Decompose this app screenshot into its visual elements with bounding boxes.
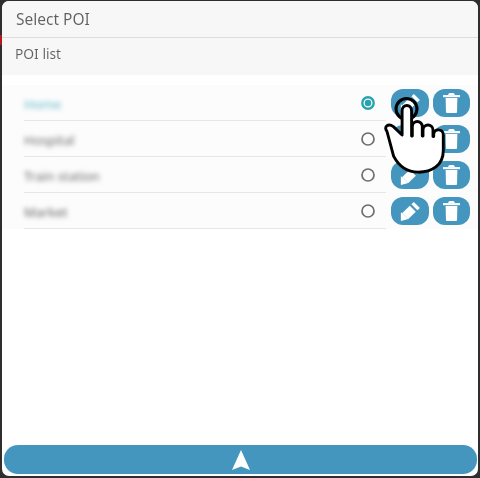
button[interactable]: Edit — [391, 161, 429, 189]
button[interactable]: Select POI — [353, 121, 382, 157]
staticText: POI list — [15, 44, 62, 63]
staticText: Home — [24, 95, 61, 113]
button[interactable]: Select POI — [353, 157, 382, 193]
staticText: Market — [24, 203, 68, 221]
button[interactable]: Edit — [391, 125, 429, 153]
button[interactable]: Delete — [433, 125, 470, 153]
button[interactable]: Delete — [433, 197, 470, 225]
button[interactable]: Edit — [391, 89, 429, 117]
button[interactable]: Delete — [433, 161, 470, 189]
button[interactable]: Select POI — [353, 85, 382, 121]
button[interactable]: Delete — [433, 89, 470, 117]
staticText: Train station — [24, 167, 100, 185]
staticText: Select POI — [16, 8, 90, 29]
button[interactable]: Edit — [391, 197, 429, 225]
button[interactable]: Select POI — [353, 193, 382, 229]
button[interactable]: Collapse panel — [4, 445, 477, 474]
staticText: Hospital — [24, 131, 75, 149]
